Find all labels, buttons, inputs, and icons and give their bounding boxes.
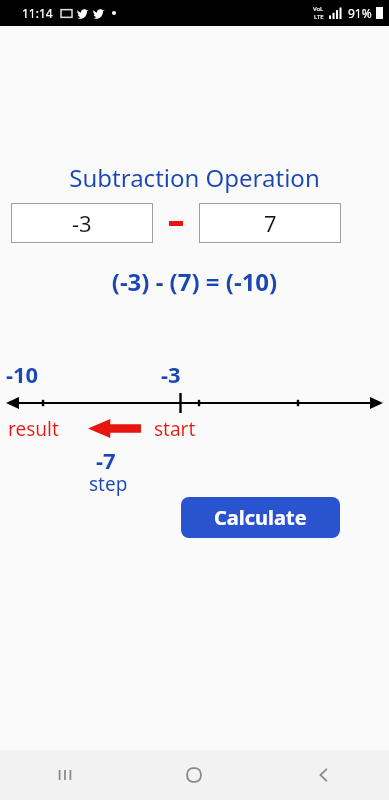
staticText: LTE <box>314 13 324 21</box>
button[interactable]: Home <box>129 750 259 800</box>
staticText: -10 <box>6 359 39 389</box>
staticText: -7 <box>96 445 116 475</box>
staticText: -3 <box>161 359 181 389</box>
staticText: Subtraction Operation <box>0 161 389 194</box>
staticText: -3 <box>72 208 92 238</box>
staticText: 91% <box>348 5 372 21</box>
staticText: Calculate <box>214 504 307 531</box>
staticText: 11:14 <box>22 5 53 21</box>
staticText: (-3) - (7) = (-10) <box>0 265 389 298</box>
staticText: VoL <box>313 5 324 13</box>
button[interactable]: Back <box>259 750 389 800</box>
button[interactable]: 7 <box>199 203 341 243</box>
staticText: step <box>89 471 128 497</box>
button[interactable]: Calculate <box>181 497 340 538</box>
staticText: result <box>8 416 59 442</box>
staticText: start <box>154 416 196 442</box>
button[interactable]: -3 <box>11 203 153 243</box>
staticText: 7 <box>264 208 277 238</box>
button[interactable]: Recent apps <box>0 750 129 800</box>
